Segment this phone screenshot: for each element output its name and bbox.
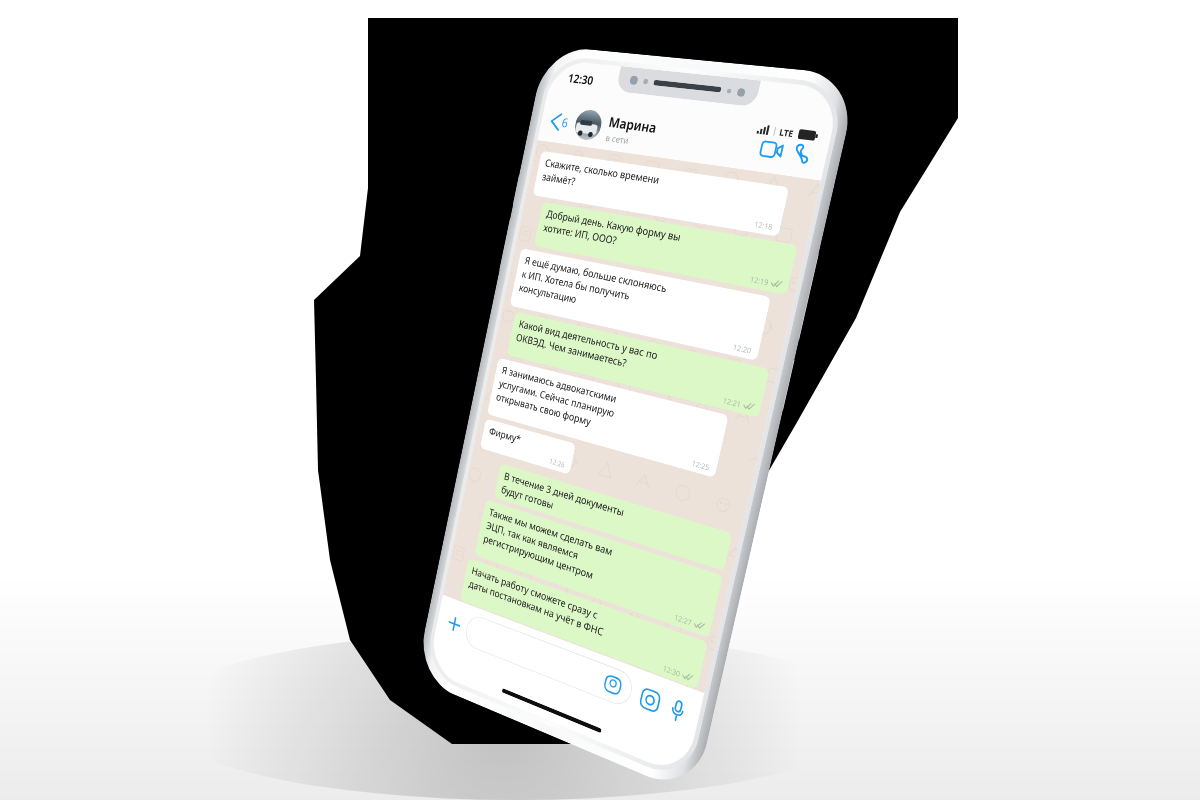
staticText: В течение 3 дней документы — [503, 469, 626, 520]
staticText: консультацию — [518, 281, 578, 307]
button[interactable]: Camera — [633, 679, 667, 720]
staticText: Начать работу сможете сразу с — [470, 564, 600, 623]
staticText: Я занимаюсь адвокатскими — [501, 363, 618, 406]
button[interactable]: Voice message — [660, 690, 695, 731]
staticText: Также мы можем сделать вам — [488, 505, 614, 559]
staticText: 12:19 — [749, 273, 770, 287]
staticText: Какой вид деятельность у вас по — [518, 317, 659, 363]
button[interactable]: В течение 3 дней документы — [494, 463, 732, 571]
button[interactable]: Contact photo — [572, 108, 604, 142]
staticText: в сети — [604, 131, 630, 147]
staticText: 12:30 — [567, 70, 595, 88]
button[interactable]: Stickers — [463, 613, 635, 709]
button[interactable]: Добрый день. Какую форму вы — [534, 201, 798, 295]
button[interactable]: Back — [546, 107, 574, 137]
staticText: 12:21 — [722, 395, 742, 409]
staticText: Скажите, сколько времени — [544, 156, 661, 187]
staticText: 12:25 — [691, 457, 711, 472]
staticText: ЭЦП, так как являемся — [485, 518, 580, 563]
staticText: 12:18 — [753, 218, 774, 232]
button[interactable]: Начать работу сможете сразу с — [460, 558, 708, 689]
staticText: 12:26 — [549, 456, 566, 470]
button[interactable]: Также мы можем сделать вам — [474, 499, 723, 638]
staticText: Добрый день. Какую форму вы — [545, 207, 683, 245]
button[interactable]: Video call — [753, 131, 790, 167]
staticText: открывать свою форму — [495, 390, 592, 429]
button[interactable]: Stickers — [603, 674, 622, 697]
button[interactable]: Фирму* — [480, 418, 576, 475]
staticText: ОКВЭД. Чем занимаетесь? — [515, 330, 628, 371]
button[interactable]: Voice call — [783, 135, 821, 172]
staticText: Марина — [607, 112, 659, 137]
staticText: хотите: ИП, ООО? — [542, 221, 618, 248]
staticText: Фирму* — [488, 424, 522, 447]
button[interactable]: Я занимаюсь адвокатскими — [487, 358, 729, 478]
staticText: даты постановкам на учёт в ФНС — [468, 577, 605, 640]
staticText: Я ещё думаю, больше склоняюсь — [523, 253, 669, 296]
staticText: займёт? — [541, 170, 577, 189]
staticText: к ИП. Хотела бы получить — [521, 267, 631, 303]
button[interactable]: Я ещё думаю, больше склоняюсь — [509, 248, 771, 361]
staticText: 6 — [560, 114, 570, 131]
button[interactable]: Какой вид деятельность у вас по — [507, 311, 770, 418]
staticText: услугами. Сейчас планирую — [498, 376, 616, 420]
staticText: 12:20 — [732, 341, 753, 356]
staticText: 12:30 — [662, 663, 681, 679]
staticText: 12:27 — [673, 612, 693, 628]
staticText: LTE — [778, 126, 795, 139]
button[interactable]: Attach — [439, 604, 469, 643]
staticText: будут готовы — [500, 482, 555, 512]
staticText: регистрирующим центром — [482, 532, 595, 583]
button[interactable]: Скажите, сколько времени — [532, 151, 789, 237]
